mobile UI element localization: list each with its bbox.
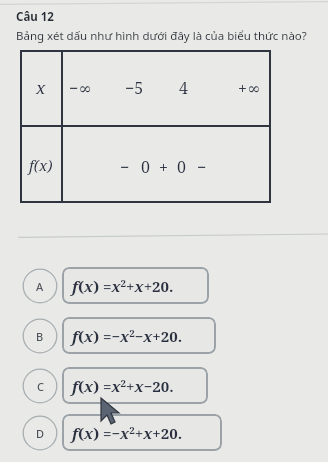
staticText: Bảng xét dấu như hình dưới đây là của bi… — [16, 28, 307, 44]
staticText: −5 — [125, 77, 144, 99]
staticText: + — [159, 156, 168, 178]
staticText: − — [120, 156, 130, 178]
staticText: 4 — [179, 77, 188, 99]
button[interactable]: f(x) =−x2+x+20. — [62, 414, 222, 451]
staticText: 0 — [177, 156, 186, 178]
button[interactable]: f(x) =−x2−x+20. — [62, 317, 216, 354]
staticText: f(x) =−x2+x+20. — [72, 423, 183, 443]
staticText: f(x) =−x2−x+20. — [72, 326, 183, 346]
staticText: −∞ — [69, 77, 92, 99]
staticText: D — [36, 426, 45, 441]
button[interactable]: f(x) =x2+x+20. — [62, 267, 209, 304]
button[interactable]: C — [20, 368, 60, 404]
staticText: 0 — [141, 156, 150, 178]
staticText: +∞ — [238, 77, 261, 99]
staticText: C — [37, 379, 44, 394]
button[interactable]: A — [20, 268, 60, 304]
staticText: A — [36, 279, 44, 294]
button[interactable]: f(x) =x2+x−20. — [62, 367, 208, 404]
button[interactable]: B — [20, 318, 60, 354]
staticText: f(x) — [29, 155, 53, 175]
staticText: − — [197, 156, 207, 178]
staticText: f(x) =x2+x+20. — [72, 276, 174, 296]
button[interactable]: D — [20, 415, 60, 451]
staticText: x — [36, 76, 46, 99]
staticText: B — [36, 329, 44, 344]
staticText: Câu 12 — [16, 9, 54, 25]
staticText: f(x) =x2+x−20. — [72, 376, 174, 396]
